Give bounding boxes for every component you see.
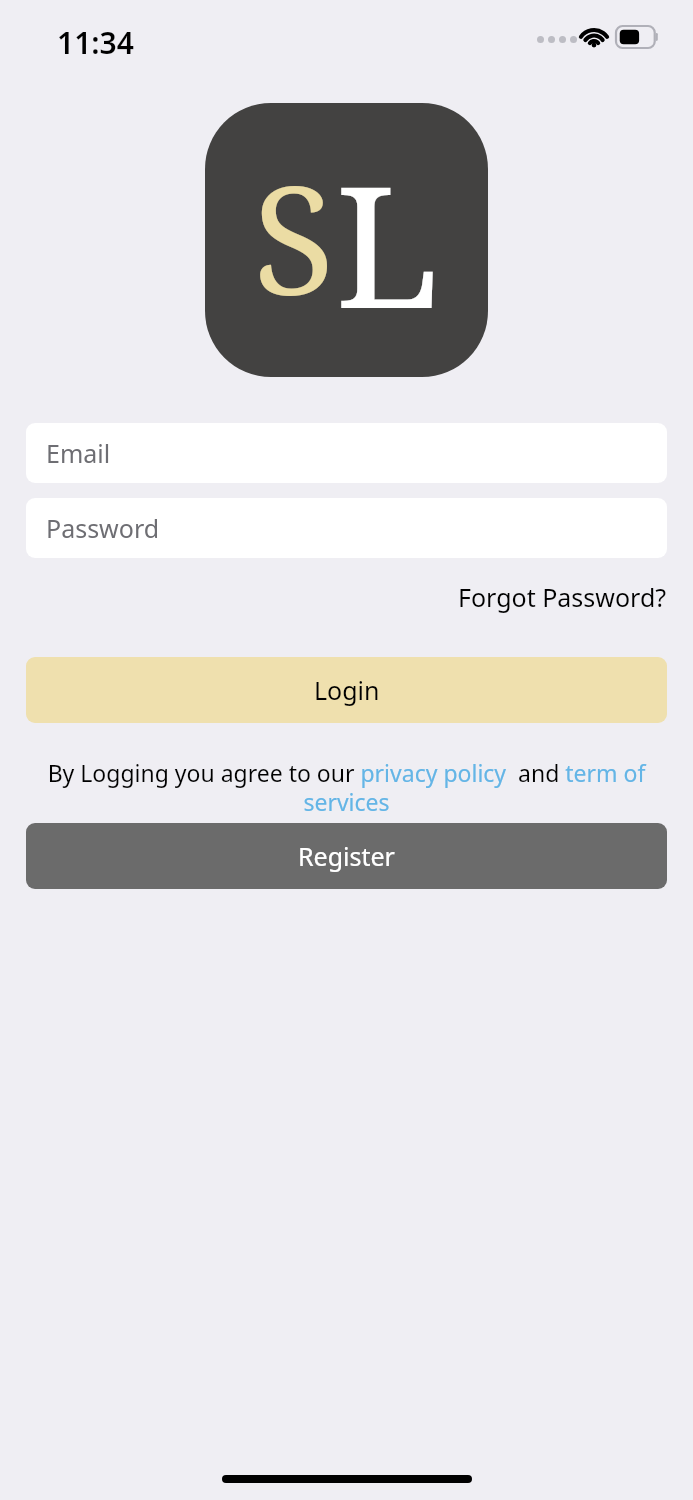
staticText: Email <box>46 436 111 470</box>
staticText: Forgot Password? <box>458 580 667 614</box>
staticText: S <box>253 135 335 339</box>
staticText: 11:34 <box>57 22 134 63</box>
staticText: Register <box>298 839 395 873</box>
staticText: Login <box>314 673 380 707</box>
button[interactable]: Email <box>26 423 667 483</box>
staticText: By Logging you agree to our privacy poli… <box>26 757 667 818</box>
staticText: L <box>335 128 440 357</box>
staticText: Password <box>46 511 160 545</box>
button[interactable]: Forgot Password? <box>458 580 667 614</box>
button[interactable]: Register <box>26 823 667 889</box>
button[interactable]: Password <box>26 498 667 558</box>
button[interactable]: Login <box>26 657 667 723</box>
